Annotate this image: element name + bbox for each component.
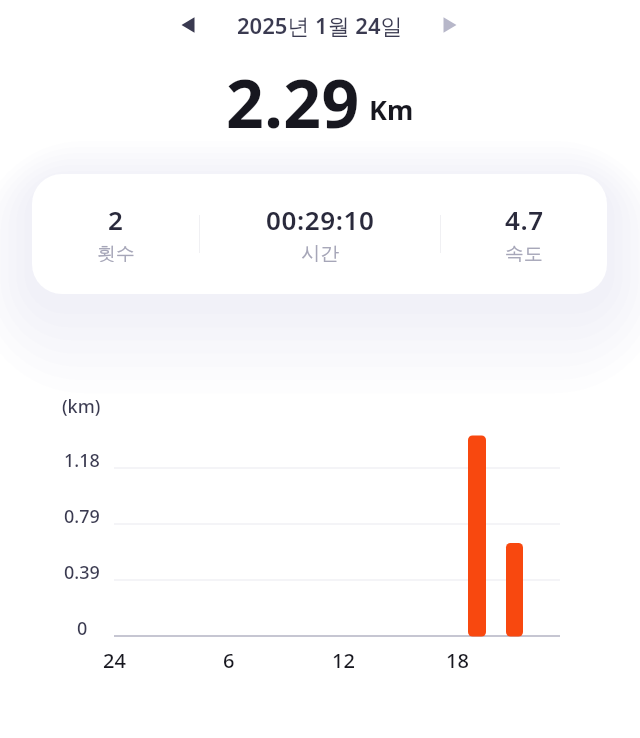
button[interactable]: Previous day bbox=[165, 3, 209, 47]
staticText: 2.29 bbox=[226, 57, 360, 147]
staticText: 18 bbox=[446, 647, 469, 674]
staticText: 0.39 bbox=[64, 560, 100, 585]
staticText: (km) bbox=[62, 394, 101, 419]
staticText: 00:29:10 bbox=[266, 202, 375, 237]
button[interactable]: Next day bbox=[428, 3, 472, 47]
staticText: 2025년 1월 24일 bbox=[237, 10, 403, 40]
staticText: 24 bbox=[103, 647, 126, 674]
staticText: 0.79 bbox=[64, 504, 100, 529]
staticText: 속도 bbox=[505, 242, 543, 266]
staticText: 0 bbox=[77, 616, 88, 641]
staticText: 2 bbox=[108, 202, 124, 237]
staticText: 6 bbox=[223, 647, 235, 674]
staticText: 횟수 bbox=[97, 242, 135, 266]
staticText: 4.7 bbox=[505, 202, 544, 237]
staticText: 1.18 bbox=[64, 448, 100, 473]
staticText: 12 bbox=[332, 647, 355, 674]
staticText: 시간 bbox=[301, 242, 339, 266]
staticText: Km bbox=[369, 91, 414, 128]
